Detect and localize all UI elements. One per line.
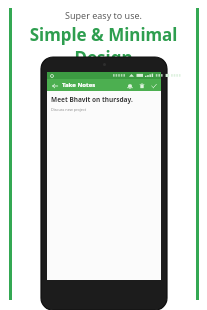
button[interactable]: Delete: [137, 81, 146, 90]
button[interactable]: Meet Bhavit on thursday.: [47, 91, 161, 280]
button[interactable]: Back: [50, 81, 59, 90]
button[interactable]: Set reminder: [125, 81, 134, 90]
staticText: Take Notes: [62, 81, 96, 89]
button[interactable]: Save note: [149, 81, 158, 90]
staticText: Simple & Minimal Design: [0, 23, 207, 69]
staticText: Meet Bhavit on thursday.: [51, 95, 133, 104]
staticText: Super easy to use.: [65, 9, 142, 21]
staticText: Discuss new project: [51, 107, 87, 112]
